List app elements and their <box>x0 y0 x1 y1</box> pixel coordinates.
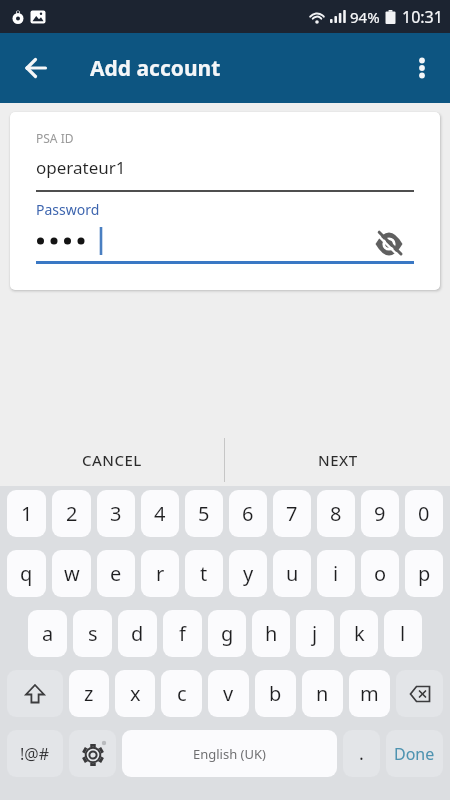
button[interactable]: c <box>161 670 202 717</box>
staticText: s <box>88 620 98 647</box>
button[interactable] <box>69 730 116 777</box>
staticText: 0 <box>418 500 430 527</box>
staticText: h <box>265 620 278 647</box>
staticText: b <box>269 680 282 707</box>
button[interactable]: !@# <box>7 730 63 777</box>
staticText: e <box>110 560 122 587</box>
staticText: r <box>156 560 165 587</box>
button[interactable]: CANCEL <box>0 436 224 483</box>
staticText: k <box>354 620 365 647</box>
button[interactable]: . <box>343 730 380 777</box>
staticText: f <box>179 620 186 647</box>
staticText: n <box>316 680 329 707</box>
staticText: m <box>360 680 379 707</box>
staticText: p <box>418 560 431 587</box>
staticText: Add account <box>90 54 221 83</box>
button[interactable]: l <box>384 610 422 657</box>
button[interactable]: q <box>7 550 46 597</box>
staticText: . <box>359 741 364 766</box>
button[interactable]: f <box>163 610 202 657</box>
staticText: w <box>64 560 80 587</box>
staticText: u <box>286 560 299 587</box>
button[interactable]: u <box>273 550 311 597</box>
staticText: v <box>223 680 234 707</box>
button[interactable]: b <box>255 670 296 717</box>
button[interactable]: 3 <box>97 490 135 537</box>
staticText: 94% <box>350 7 380 27</box>
button[interactable]: e <box>97 550 135 597</box>
staticText: i <box>333 560 339 587</box>
button[interactable]: j <box>296 610 334 657</box>
button[interactable]: s <box>73 610 112 657</box>
button[interactable]: 5 <box>185 490 223 537</box>
staticText: Done <box>394 743 435 765</box>
staticText: 5 <box>198 500 210 527</box>
staticText: y <box>243 560 254 587</box>
button[interactable] <box>400 46 444 90</box>
staticText: l <box>400 620 406 647</box>
staticText: 4 <box>154 500 166 527</box>
staticText: CANCEL <box>82 450 142 470</box>
button[interactable]: n <box>302 670 343 717</box>
staticText: t <box>200 560 208 587</box>
button[interactable] <box>396 670 443 717</box>
button[interactable]: h <box>252 610 290 657</box>
staticText: English (UK) <box>193 745 266 763</box>
staticText: 8 <box>330 500 342 527</box>
staticText: 2 <box>66 500 78 527</box>
button[interactable]: i <box>317 550 355 597</box>
button[interactable]: g <box>208 610 246 657</box>
button[interactable] <box>7 670 63 717</box>
button[interactable] <box>375 230 403 258</box>
staticText: 6 <box>242 500 254 527</box>
staticText: 9 <box>374 500 386 527</box>
staticText: g <box>221 620 234 647</box>
button[interactable]: 9 <box>361 490 399 537</box>
button[interactable]: t <box>185 550 223 597</box>
button[interactable]: Done <box>386 730 443 777</box>
button[interactable]: 2 <box>52 490 91 537</box>
staticText: !@# <box>20 743 50 765</box>
staticText: PSA ID <box>36 130 74 146</box>
button[interactable]: m <box>349 670 390 717</box>
staticText: x <box>130 680 141 707</box>
button[interactable]: k <box>340 610 378 657</box>
staticText: 3 <box>110 500 122 527</box>
button[interactable]: 1 <box>7 490 46 537</box>
button[interactable]: 0 <box>405 490 443 537</box>
button[interactable]: NEXT <box>225 436 450 483</box>
staticText: 10:31 <box>402 6 443 28</box>
button[interactable]: v <box>208 670 249 717</box>
staticText: o <box>374 560 387 587</box>
button[interactable]: 7 <box>273 490 311 537</box>
button[interactable]: 8 <box>317 490 355 537</box>
button[interactable]: English (UK) <box>122 730 337 777</box>
staticText: d <box>131 620 144 647</box>
button[interactable] <box>14 46 58 90</box>
staticText: z <box>84 680 94 707</box>
button[interactable]: z <box>69 670 109 717</box>
staticText: j <box>312 620 318 647</box>
button[interactable]: o <box>361 550 399 597</box>
staticText: 1 <box>21 500 33 527</box>
staticText: NEXT <box>318 450 358 470</box>
staticText: a <box>42 620 54 647</box>
button[interactable]: a <box>28 610 67 657</box>
staticText: q <box>20 560 33 587</box>
button[interactable] <box>36 225 414 257</box>
staticText: 7 <box>286 500 298 527</box>
button[interactable]: r <box>141 550 179 597</box>
button[interactable]: p <box>405 550 443 597</box>
button[interactable]: w <box>52 550 91 597</box>
staticText: Password <box>36 200 100 219</box>
button[interactable]: y <box>229 550 267 597</box>
button[interactable]: 4 <box>141 490 179 537</box>
staticText: operateur1 <box>36 156 126 179</box>
staticText: c <box>177 680 187 707</box>
button[interactable]: d <box>118 610 157 657</box>
button[interactable]: x <box>115 670 155 717</box>
button[interactable]: 6 <box>229 490 267 537</box>
